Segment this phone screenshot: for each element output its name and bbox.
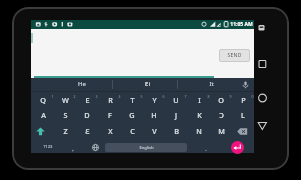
staticText: G: [129, 110, 135, 120]
button[interactable]: [36, 127, 45, 136]
staticText: 5: [140, 94, 143, 99]
staticText: ,: [72, 145, 74, 152]
staticText: U: [173, 95, 179, 105]
staticText: S: [63, 110, 68, 120]
staticText: W: [62, 95, 69, 105]
staticText: R: [108, 95, 113, 105]
staticText: C: [130, 126, 135, 136]
staticText: 2: [73, 94, 76, 99]
staticText: Y: [152, 95, 157, 105]
button[interactable]: [31, 78, 254, 91]
staticText: Z: [63, 126, 68, 136]
staticText: T: [130, 95, 135, 105]
staticText: B: [174, 126, 179, 136]
button[interactable]: English: [105, 143, 187, 152]
staticText: I: [198, 95, 201, 105]
staticText: 7: [184, 94, 187, 99]
staticText: 1: [51, 94, 54, 99]
staticText: 0: [251, 94, 254, 99]
staticText: English: [139, 145, 154, 151]
staticText: M: [218, 126, 225, 136]
staticText: 3: [95, 94, 98, 99]
staticText: N: [196, 126, 202, 136]
staticText: Ɛ: [85, 126, 90, 136]
staticText: L: [241, 110, 245, 120]
staticText: V: [152, 126, 157, 136]
staticText: E: [85, 95, 90, 105]
button[interactable]: [231, 141, 244, 154]
staticText: P: [241, 95, 246, 105]
staticText: 9: [229, 94, 232, 99]
staticText: J: [175, 110, 177, 120]
button[interactable]: [92, 144, 99, 151]
staticText: 4: [118, 94, 121, 99]
button[interactable]: SEND: [219, 49, 250, 62]
staticText: 6: [162, 94, 165, 99]
staticText: A: [41, 110, 46, 120]
staticText: O: [218, 95, 224, 105]
staticText: .: [205, 145, 207, 152]
button[interactable]: [237, 128, 248, 135]
staticText: D: [84, 110, 90, 120]
staticText: H: [151, 110, 157, 120]
staticText: It: [209, 80, 214, 88]
staticText: Q: [40, 95, 46, 105]
staticText: Ɔ: [219, 110, 224, 120]
staticText: SEND: [227, 52, 242, 59]
staticText: 11:05 AM: [230, 21, 253, 28]
staticText: X: [108, 126, 113, 136]
staticText: K: [197, 110, 202, 120]
staticText: ?123: [43, 144, 53, 150]
staticText: Ei: [145, 80, 150, 88]
staticText: He: [78, 80, 86, 88]
staticText: F: [108, 110, 112, 120]
staticText: 8: [207, 94, 210, 99]
